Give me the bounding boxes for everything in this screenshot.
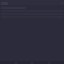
button[interactable]: More options: [0, 1, 64, 5]
